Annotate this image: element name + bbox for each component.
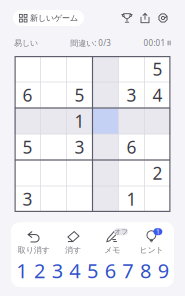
staticText: 5 (22, 135, 32, 158)
staticText: 3 (74, 135, 84, 158)
staticText: 00:01 (143, 38, 165, 48)
staticText: 2 (152, 161, 162, 184)
staticText: 6 (105, 257, 116, 284)
staticText: 3 (126, 83, 136, 106)
staticText: 9 (158, 257, 169, 284)
staticText: 間違い: 0/3 (70, 38, 111, 48)
button[interactable]: 6 (101, 261, 119, 280)
staticText: 5 (74, 83, 84, 106)
button[interactable]: 1 (132, 230, 171, 255)
staticText: ヒント (139, 245, 163, 255)
staticText: メモ (104, 245, 120, 255)
staticText: 7 (122, 257, 133, 284)
button[interactable]: Settings (154, 10, 172, 26)
staticText: 1 (156, 227, 160, 236)
staticText: 8 (140, 257, 151, 284)
button[interactable]: 8 (137, 261, 154, 280)
button[interactable]: Share (136, 10, 154, 26)
staticText: 5 (87, 257, 98, 284)
staticText: 5 (152, 57, 162, 80)
staticText: 3 (22, 187, 32, 210)
button[interactable]: 消す (53, 230, 92, 255)
staticText: 1 (16, 257, 27, 284)
button[interactable]: 取り消す (14, 230, 53, 255)
staticText: 6 (22, 83, 32, 106)
staticText: 4 (152, 83, 162, 106)
staticText: 易しい (14, 38, 38, 48)
button[interactable]: 7 (119, 261, 137, 280)
staticText: 6 (126, 135, 136, 158)
button[interactable]: オフ (92, 230, 132, 255)
button[interactable]: 4 (66, 261, 84, 280)
staticText: 消す (65, 245, 81, 255)
staticText: オフ (114, 228, 128, 236)
staticText: 1 (74, 109, 84, 132)
staticText: 3 (52, 257, 63, 284)
button[interactable]: 9 (154, 261, 172, 280)
staticText: 4 (69, 257, 80, 284)
button[interactable]: 1 (13, 261, 31, 280)
button[interactable]: 5 (84, 261, 101, 280)
button[interactable]: Statistics (118, 10, 136, 26)
button[interactable]: 新しいゲーム (13, 10, 84, 26)
staticText: 1 (126, 187, 136, 210)
staticText: 取り消す (18, 245, 50, 255)
staticText: 2 (34, 257, 45, 284)
button[interactable]: 2 (31, 261, 48, 280)
button[interactable]: 3 (48, 261, 66, 280)
staticText: 新しいゲーム (30, 13, 78, 23)
